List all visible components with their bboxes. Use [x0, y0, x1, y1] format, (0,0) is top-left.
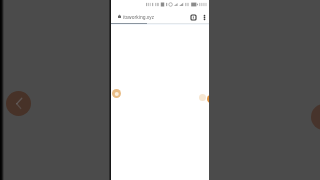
button[interactable]: Next page: [207, 95, 209, 103]
button[interactable]: Address bar: [111, 10, 171, 23]
button[interactable]: Next: [311, 104, 320, 130]
button[interactable]: Previous page: [112, 89, 121, 98]
button[interactable]: Tabs: [187, 11, 199, 23]
staticText: itsworking.xyz: [123, 14, 154, 20]
button[interactable]: Previous: [6, 91, 31, 116]
button[interactable]: More options: [199, 12, 209, 22]
